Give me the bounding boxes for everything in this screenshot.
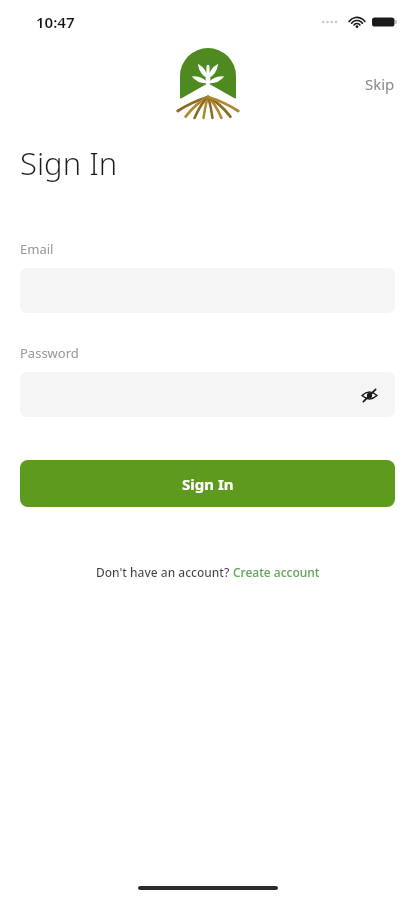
- staticText: Sign In: [182, 474, 234, 494]
- staticText: Skip: [365, 74, 395, 94]
- button[interactable]: Show password: [20, 372, 395, 417]
- staticText: Sign In: [20, 142, 118, 184]
- staticText: Password: [20, 344, 79, 362]
- staticText: Create account: [233, 564, 320, 580]
- button[interactable]: Sign In: [20, 460, 395, 507]
- staticText: Don't have an account?: [96, 564, 233, 580]
- button[interactable]: Skip: [345, 64, 415, 104]
- staticText: 10:47: [36, 12, 75, 32]
- button[interactable]: Show password: [353, 379, 385, 411]
- staticText: Email: [20, 240, 54, 258]
- button[interactable]: Create account: [233, 560, 320, 584]
